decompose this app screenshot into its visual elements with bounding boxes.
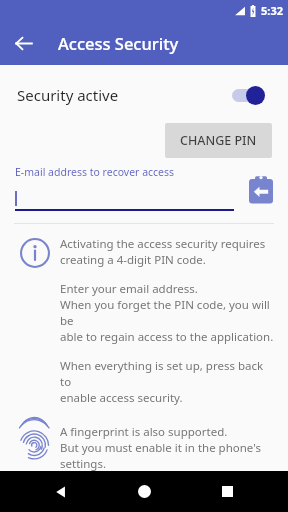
button[interactable]: Back (39, 471, 83, 512)
staticText: Activating the access security requires … (60, 236, 266, 268)
button[interactable]: Home (122, 471, 166, 512)
staticText: Access Security (58, 32, 179, 54)
button[interactable]: Paste email address (244, 173, 278, 207)
button[interactable]: CHANGE PIN (165, 123, 272, 158)
staticText: 5:32 (261, 3, 283, 18)
staticText: CHANGE PIN (180, 132, 257, 149)
button[interactable]: Security active (0, 75, 288, 115)
button[interactable] (15, 187, 234, 209)
staticText: Enter your email address. When you forge… (60, 281, 276, 345)
staticText: A fingerprint is also supported. But you… (60, 424, 261, 471)
button[interactable]: Back (6, 26, 40, 60)
staticText: E-mail address to recover access (15, 165, 175, 179)
staticText: Security active (17, 85, 119, 105)
staticText: When everything is set up, press back to… (60, 358, 276, 406)
button[interactable]: Recent apps (205, 471, 249, 512)
